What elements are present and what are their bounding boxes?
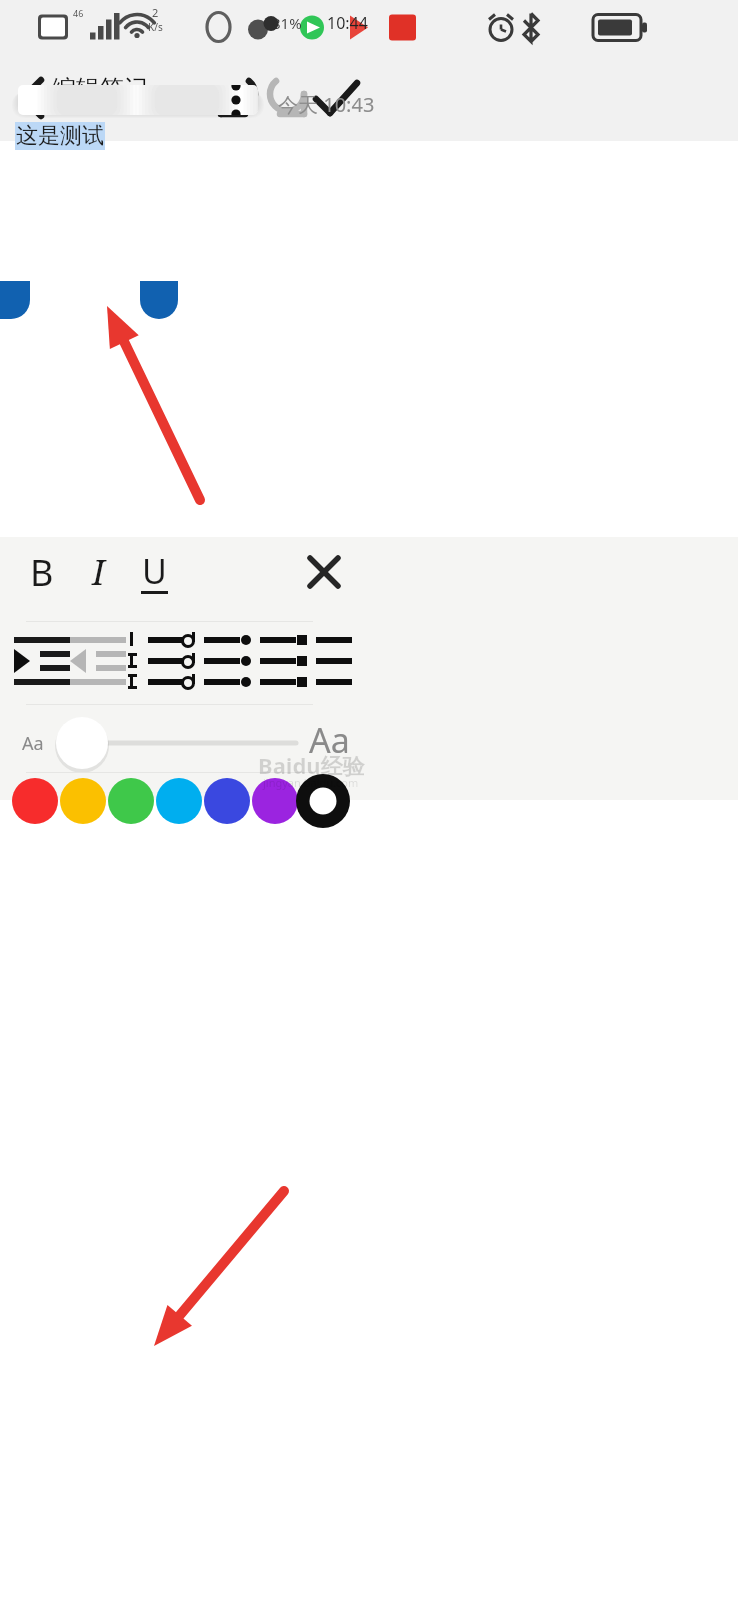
button[interactable]: I (68, 542, 128, 602)
staticText: 2 (152, 5, 159, 20)
button[interactable]: Text colour 3 (107, 777, 155, 825)
staticText: 这是测试 (16, 122, 104, 150)
staticText: I (92, 548, 105, 596)
button[interactable]: Undo (205, 65, 271, 131)
button[interactable]: Back (12, 65, 78, 131)
button[interactable]: Text colour black, selected (299, 777, 347, 825)
button[interactable]: Increase indent (12, 631, 72, 691)
staticText: jingyan.baidu.com (263, 775, 359, 790)
button[interactable]: Numbered list (124, 631, 184, 691)
button[interactable]: Lettered list (180, 631, 240, 691)
button[interactable]: Text colour 2 (59, 777, 107, 825)
button[interactable]: More options (18, 85, 258, 115)
staticText: K/s (148, 20, 163, 34)
button[interactable]: Save note (303, 65, 369, 131)
button[interactable]: Font size slider (44, 710, 304, 770)
button[interactable]: Text colour 5 (203, 777, 251, 825)
button[interactable]: Redo (254, 65, 320, 131)
staticText: 81% (272, 13, 302, 33)
button[interactable]: Text colour 1 (11, 777, 59, 825)
button[interactable]: 这是测试 (15, 122, 105, 150)
staticText: Aa (309, 717, 350, 763)
staticText: U (142, 548, 167, 594)
button[interactable]: Decrease indent (68, 631, 128, 691)
button[interactable]: Bulleted list (236, 631, 296, 691)
button[interactable]: Text colour 4 (155, 777, 203, 825)
button[interactable]: Square bulleted list (292, 631, 352, 691)
staticText: 10:44 (327, 12, 368, 34)
staticText: Aa (22, 731, 44, 756)
button[interactable]: Close formatting bar (301, 549, 347, 595)
staticText: 46 (73, 7, 84, 19)
staticText: 今天 10:43 (278, 91, 375, 118)
staticText: 编辑笔记 (52, 74, 148, 104)
button[interactable]: U (124, 542, 184, 602)
staticText: Baidu经验 (258, 750, 365, 780)
button[interactable]: More options (218, 85, 258, 115)
staticText: B (30, 548, 54, 597)
button[interactable]: B (12, 542, 72, 602)
button[interactable]: Text colour 6 (251, 777, 299, 825)
